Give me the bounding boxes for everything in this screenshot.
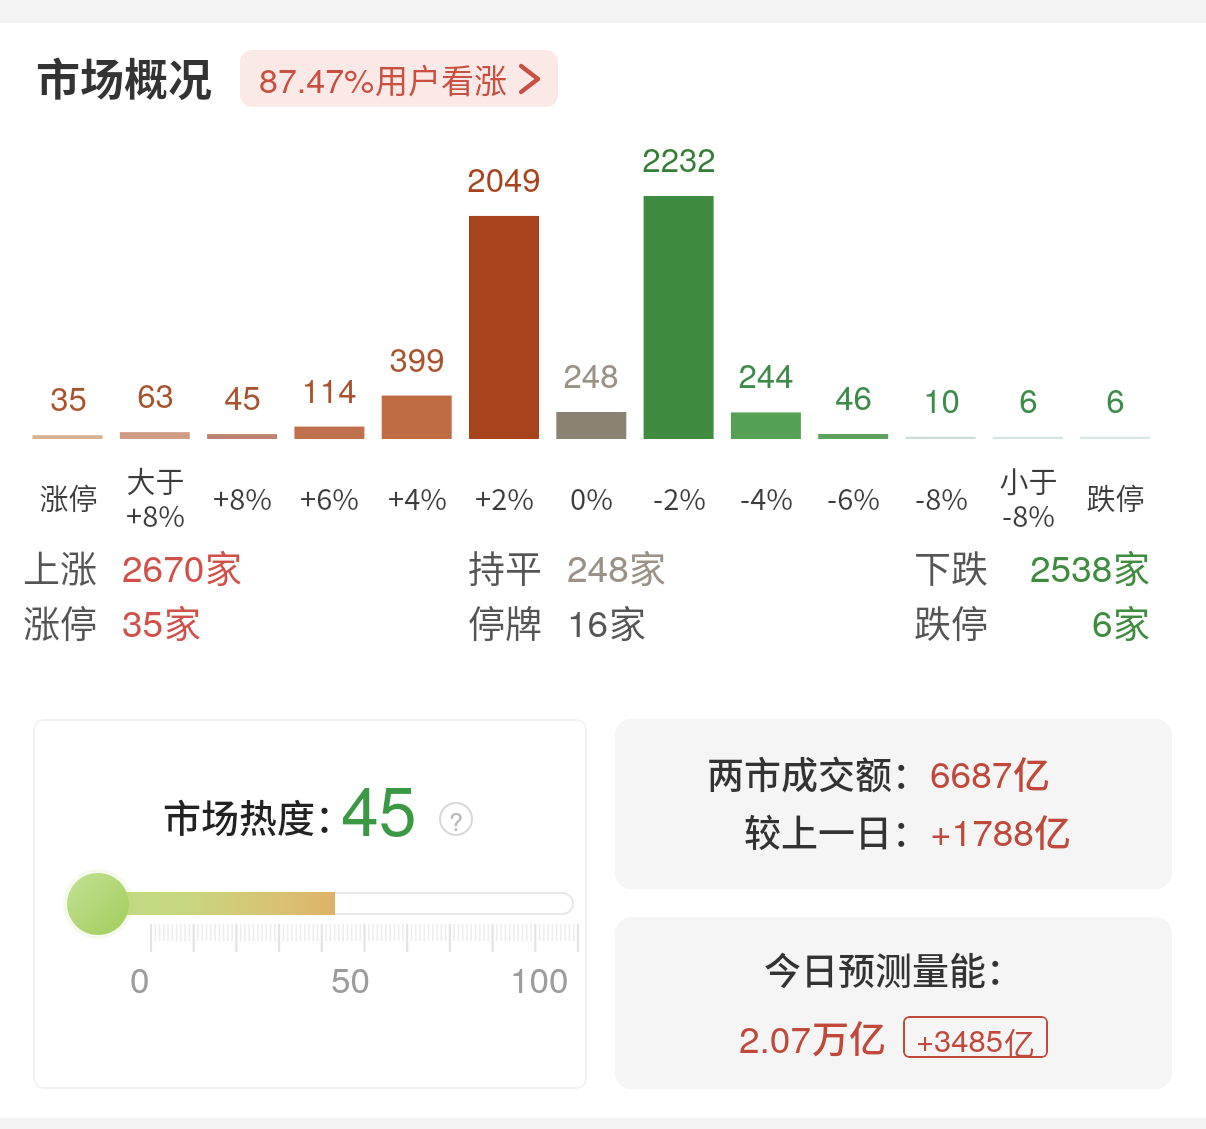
staticText: +2% — [475, 476, 534, 518]
staticText: 万亿 — [812, 1010, 886, 1064]
staticText: 亿 — [1004, 1019, 1035, 1058]
staticText: 6 — [1019, 375, 1038, 422]
staticText: +3485 — [916, 1016, 1004, 1058]
staticText: -8% — [915, 476, 968, 518]
staticText: 16 — [567, 595, 609, 648]
staticText: 2232 — [642, 134, 716, 181]
staticText: 家 — [629, 540, 666, 594]
staticText: 小于 — [999, 459, 1058, 501]
staticText: 399 — [389, 334, 445, 381]
staticText: 家 — [1113, 540, 1150, 594]
staticText: 248 — [563, 350, 619, 397]
staticText: 两市成交额： — [707, 746, 929, 800]
staticText: 35 — [50, 373, 87, 420]
staticText: 35 — [122, 595, 164, 648]
staticText: 2670 — [122, 540, 205, 593]
staticText: 50 — [331, 953, 370, 1003]
staticText: 63 — [137, 370, 174, 417]
staticText: +8% — [126, 493, 185, 527]
staticText: 家 — [205, 540, 242, 594]
staticText: 停牌 — [468, 595, 542, 649]
staticText: 涨停 — [39, 476, 98, 518]
staticText: 6687 — [930, 746, 1013, 799]
staticText: 亿 — [1013, 746, 1050, 800]
staticText: +1788 — [930, 804, 1034, 857]
button[interactable]: 87.47% — [240, 50, 558, 107]
staticText: -4% — [740, 476, 793, 518]
staticText: ? — [449, 802, 463, 836]
staticText: 248 — [567, 540, 629, 593]
staticText: 2538 — [1030, 540, 1113, 593]
staticText: 100 — [510, 953, 569, 1003]
staticText: 跌停 — [914, 595, 988, 649]
staticText: 0 — [130, 953, 150, 1003]
staticText: +6% — [300, 476, 359, 518]
staticText: 87.47% — [259, 54, 375, 103]
staticText: 45 — [224, 372, 261, 419]
staticText: 家 — [164, 595, 201, 649]
staticText: 244 — [738, 350, 794, 397]
staticText: 上涨 — [23, 540, 97, 594]
staticText: 6 — [1092, 595, 1113, 648]
staticText: -8% — [1002, 493, 1055, 527]
staticText: 0% — [570, 476, 613, 518]
button[interactable]: 两市成交额： — [615, 719, 1172, 889]
staticText: -6% — [827, 476, 880, 518]
staticText: 6 — [1106, 375, 1125, 422]
button[interactable]: 市场热度： — [33, 719, 587, 1089]
staticText: +4% — [388, 476, 447, 518]
staticText: 大于 — [126, 459, 185, 501]
staticText: -2% — [653, 476, 706, 518]
button[interactable]: 帮助 — [439, 802, 473, 836]
staticText: 家 — [1113, 595, 1150, 649]
button[interactable]: 今日预测量能： — [615, 917, 1172, 1089]
staticText: +8% — [213, 476, 272, 518]
staticText: 跌停 — [1086, 476, 1145, 518]
staticText: 涨停 — [23, 595, 97, 649]
staticText: 下跌 — [914, 540, 988, 594]
staticText: 持平 — [468, 540, 542, 594]
staticText: 用户看涨 — [375, 55, 507, 103]
staticText: 114 — [301, 365, 357, 412]
staticText: 较上一日： — [744, 804, 929, 858]
staticText: 2049 — [467, 154, 541, 201]
staticText: 今日预测量能： — [764, 942, 1023, 996]
staticText: 45 — [341, 758, 417, 855]
staticText: 亿 — [1034, 804, 1071, 858]
staticText: 市场概况 — [36, 45, 212, 109]
staticText: 10 — [923, 375, 960, 422]
staticText: 市场热度： — [163, 788, 354, 843]
staticText: 2.07 — [739, 1011, 812, 1064]
staticText: 家 — [609, 595, 646, 649]
staticText: 46 — [835, 372, 872, 419]
